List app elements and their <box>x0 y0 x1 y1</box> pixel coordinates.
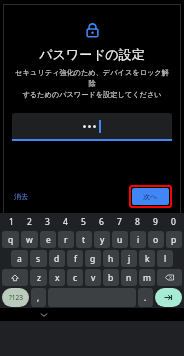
button[interactable]: 6 <box>92 215 110 229</box>
staticText: セキュリティ強化のため、デバイスをロック解除 するためのパスワードを設定してくだ… <box>12 68 172 99</box>
button[interactable]: 1 <box>2 215 20 229</box>
button[interactable]: Hide keyboard <box>39 310 49 320</box>
button[interactable] <box>12 113 172 139</box>
button[interactable]: 5 <box>74 215 92 229</box>
staticText: l <box>164 253 167 265</box>
staticText: g <box>90 253 96 265</box>
staticText: v <box>91 272 96 284</box>
staticText: c <box>73 272 78 284</box>
button[interactable]: n <box>121 269 137 286</box>
button[interactable]: o <box>148 231 164 248</box>
button[interactable]: d <box>49 250 65 267</box>
button[interactable]: y <box>94 231 110 248</box>
button[interactable]: 0 <box>164 215 182 229</box>
staticText: 1 <box>9 216 14 228</box>
button[interactable]: . <box>138 288 153 307</box>
button[interactable]: v <box>85 269 101 286</box>
button[interactable]: 7 <box>110 215 128 229</box>
button[interactable]: e <box>40 231 56 248</box>
staticText: e <box>46 234 51 246</box>
button[interactable]: 消去 <box>12 189 30 204</box>
staticText: w <box>26 234 33 246</box>
staticText: p <box>171 234 177 246</box>
staticText: s <box>36 253 41 265</box>
staticText: b <box>108 272 114 284</box>
button[interactable]: w <box>21 231 38 248</box>
staticText: 消去 <box>14 192 28 201</box>
button[interactable]: z <box>30 269 47 286</box>
button[interactable]: Shift <box>2 269 28 286</box>
button[interactable]: p <box>166 231 182 248</box>
staticText: 6 <box>99 216 104 228</box>
button[interactable]: b <box>103 269 119 286</box>
button[interactable]: i <box>130 231 146 248</box>
button[interactable]: k <box>139 250 155 267</box>
button[interactable]: , <box>31 288 46 307</box>
button[interactable]: t <box>76 231 92 248</box>
staticText: . <box>144 292 147 303</box>
button[interactable]: ?123 <box>2 288 29 307</box>
staticText: h <box>108 253 114 265</box>
staticText: j <box>128 253 131 265</box>
button[interactable]: x <box>49 269 65 286</box>
button[interactable]: s <box>30 250 47 267</box>
button[interactable]: 2 <box>20 215 38 229</box>
staticText: d <box>54 253 60 265</box>
button[interactable]: 3 <box>38 215 56 229</box>
button[interactable]: u <box>112 231 128 248</box>
staticText: 8 <box>135 216 140 228</box>
staticText: m <box>143 272 151 284</box>
button[interactable]: 4 <box>56 215 74 229</box>
button[interactable]: r <box>58 231 74 248</box>
button[interactable]: 次へ <box>132 188 169 205</box>
staticText: 5 <box>81 216 86 228</box>
button[interactable]: Backspace <box>157 269 182 286</box>
button[interactable]: f <box>67 250 83 267</box>
staticText: t <box>82 234 86 246</box>
staticText: x <box>55 272 60 284</box>
button[interactable]: m <box>139 269 155 286</box>
staticText: r <box>64 234 68 246</box>
staticText: 2 <box>27 216 32 228</box>
staticText: k <box>145 253 150 265</box>
button[interactable]: c <box>67 269 83 286</box>
button[interactable]: j <box>121 250 137 267</box>
staticText: f <box>74 253 77 265</box>
staticText: パスワードの設定 <box>12 46 172 62</box>
button[interactable]: a <box>11 250 28 267</box>
staticText: y <box>100 234 105 246</box>
staticText: 3 <box>45 216 50 228</box>
staticText: 次へ <box>143 192 158 201</box>
button[interactable]: q <box>2 231 19 248</box>
button[interactable]: Next <box>155 288 182 307</box>
staticText: u <box>117 234 123 246</box>
staticText: n <box>126 272 132 284</box>
staticText: a <box>17 253 22 265</box>
staticText: ?123 <box>9 293 23 302</box>
staticText: o <box>153 234 159 246</box>
other: Lock <box>85 23 100 38</box>
staticText: i <box>137 234 140 246</box>
button[interactable]: h <box>103 250 119 267</box>
staticText: , <box>37 292 40 303</box>
button[interactable]: l <box>157 250 173 267</box>
staticText: 7 <box>117 216 122 228</box>
staticText: 0 <box>171 216 176 228</box>
button[interactable]: 8 <box>128 215 146 229</box>
staticText: 4 <box>63 216 68 228</box>
staticText: q <box>8 234 14 246</box>
staticText: 9 <box>153 216 158 228</box>
button[interactable]: 9 <box>146 215 164 229</box>
staticText: z <box>37 272 41 284</box>
button[interactable]: g <box>85 250 101 267</box>
